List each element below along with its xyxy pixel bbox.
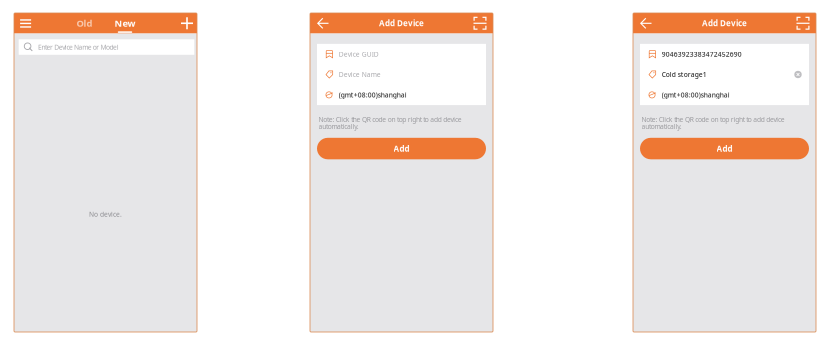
button[interactable]: Back — [310, 13, 336, 33]
button[interactable]: Add — [640, 138, 809, 159]
staticText: (gmt+08:00)shanghai — [662, 90, 730, 99]
button[interactable]: New — [108, 13, 142, 33]
staticText: New — [114, 17, 135, 29]
staticText: Cold storage1 — [662, 70, 707, 79]
button[interactable]: Menu — [15, 13, 37, 33]
button[interactable]: Old — [67, 13, 101, 33]
staticText: No device. — [89, 210, 122, 219]
staticText: Device GUID — [339, 50, 379, 59]
staticText: 90463923383472452690 — [662, 50, 742, 59]
staticText: Enter Device Name or Model — [38, 43, 119, 51]
staticText: Add Device — [379, 18, 424, 28]
button[interactable]: Scan QR code — [467, 13, 493, 33]
staticText: Add — [393, 143, 409, 154]
staticText: Note: Click the QR code on top right to … — [318, 115, 462, 131]
staticText: (gmt+08:00)shanghai — [339, 90, 407, 99]
button[interactable]: Back — [633, 13, 659, 33]
button[interactable]: Add device — [176, 13, 198, 33]
staticText: Note: Click the QR code on top right to … — [641, 115, 785, 131]
staticText: Device Name — [339, 70, 381, 79]
staticText: Add — [716, 143, 732, 154]
staticText: Add Device — [702, 18, 747, 28]
button[interactable]: Add — [317, 138, 486, 159]
staticText: Old — [76, 17, 92, 29]
button[interactable]: Scan QR code — [790, 13, 816, 33]
